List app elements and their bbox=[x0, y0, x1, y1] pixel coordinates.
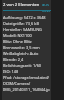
button[interactable]: Auflösung: 5472 x 3648 bbox=[3, 14, 51, 20]
staticText: DCIM/Camera/ bbox=[3, 81, 31, 86]
button[interactable]: 2 von 2 Elementen bbox=[3, 2, 40, 8]
button[interactable]: Modell: NX1100 bbox=[3, 32, 51, 38]
button[interactable]: Pfad: /storage/emulated/0/ bbox=[3, 74, 51, 80]
button[interactable]: Brennweite: 3,5 mm bbox=[3, 44, 51, 50]
button[interactable]: ausgewählt bbox=[42, 2, 51, 12]
button[interactable]: Blitz: Ohne Blitz bbox=[3, 38, 51, 44]
staticText: Brennweite: 3,5 mm bbox=[3, 45, 40, 50]
button[interactable]: Weißabgleich: Auto bbox=[3, 50, 51, 56]
staticText: Modell: NX1100 bbox=[3, 33, 32, 38]
button[interactable]: Blende: 2,4 bbox=[3, 56, 51, 62]
staticText: Belichtungszeit: 1/60 bbox=[3, 63, 42, 68]
button[interactable]: IMG_20140311_164944.jpg bbox=[3, 86, 51, 92]
staticText: Blitz: Ohne Blitz bbox=[3, 39, 32, 44]
staticText: Pfad: /storage/emulated/0/ bbox=[3, 75, 51, 80]
button[interactable]: ISO: 148 bbox=[3, 68, 51, 74]
button[interactable]: Hersteller: SAMSUNG bbox=[3, 26, 51, 32]
staticText: IMG_20140311_164944.jpg bbox=[3, 87, 51, 92]
staticText: Auflösung: 5472 x 3648 bbox=[3, 15, 46, 20]
staticText: ISO: 148 bbox=[3, 69, 19, 74]
staticText: Weißabgleich: Auto bbox=[3, 51, 39, 56]
button[interactable]: DCIM/Camera/ bbox=[3, 80, 51, 86]
button[interactable]: Belichtungszeit: 1/60 bbox=[3, 62, 51, 68]
staticText: Blende: 2,4 bbox=[3, 57, 24, 62]
button[interactable]: Dateigröße: 73,6 kB bbox=[3, 20, 51, 26]
staticText: Dateigröße: 73,6 kB bbox=[3, 21, 39, 26]
staticText: Hersteller: SAMSUNG bbox=[3, 27, 42, 32]
